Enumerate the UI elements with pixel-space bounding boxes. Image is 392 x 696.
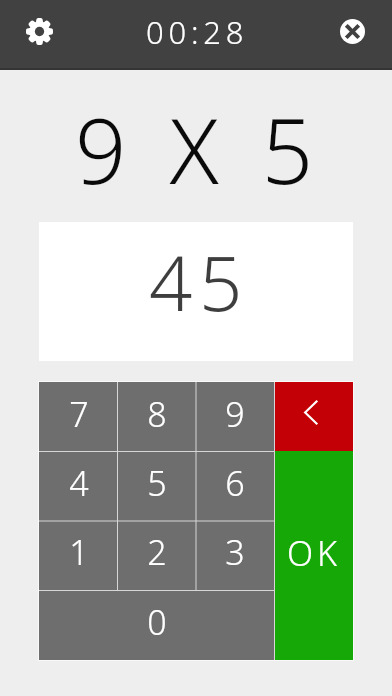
button[interactable]: 6 bbox=[196, 451, 274, 520]
staticText: 8 bbox=[147, 391, 167, 437]
button[interactable]: 7 bbox=[39, 382, 118, 451]
staticText: 0 bbox=[147, 599, 167, 645]
staticText: 1 bbox=[69, 529, 89, 575]
staticText: 4 bbox=[69, 460, 89, 506]
staticText: 5 bbox=[147, 460, 167, 506]
button[interactable]: 9 bbox=[196, 382, 274, 451]
button[interactable]: 4 bbox=[39, 451, 118, 520]
staticText: 2 bbox=[147, 529, 167, 575]
button[interactable]: Settings bbox=[16, 8, 63, 55]
button[interactable]: 2 bbox=[118, 520, 196, 590]
staticText: 9 bbox=[225, 391, 245, 437]
button[interactable]: Close bbox=[329, 8, 376, 55]
staticText: 3 bbox=[225, 529, 245, 575]
button[interactable]: OK bbox=[274, 451, 353, 660]
button[interactable]: Backspace bbox=[274, 382, 353, 451]
button[interactable]: 5 bbox=[118, 451, 196, 520]
staticText: OK bbox=[287, 530, 342, 576]
button[interactable]: 8 bbox=[118, 382, 196, 451]
button[interactable]: 3 bbox=[196, 520, 274, 590]
button[interactable]: 0 bbox=[39, 590, 274, 660]
staticText: 9 X 5 bbox=[75, 88, 323, 211]
staticText: 00:28 bbox=[146, 11, 249, 53]
staticText: 6 bbox=[225, 460, 245, 506]
staticText: 7 bbox=[69, 391, 89, 437]
button[interactable]: 1 bbox=[39, 520, 118, 590]
staticText: 45 bbox=[149, 230, 249, 334]
